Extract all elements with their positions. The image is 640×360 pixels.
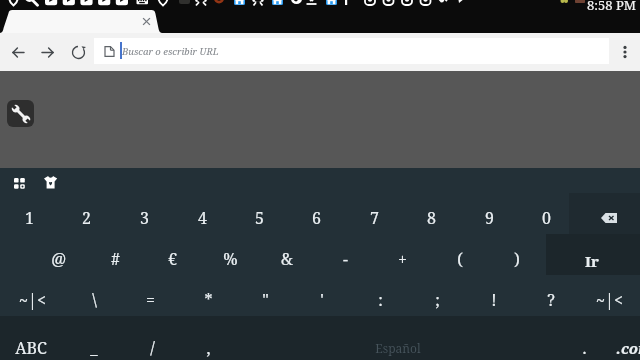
button[interactable]: _	[65, 316, 123, 360]
staticText: &	[281, 248, 293, 270]
staticText: 8	[427, 207, 436, 229]
button[interactable]: €	[143, 234, 201, 275]
staticText: 3	[140, 207, 149, 229]
staticText: 8:58 PM	[587, 0, 636, 14]
staticText: 9	[485, 207, 494, 229]
staticText: ;	[435, 289, 440, 311]
staticText: (	[457, 248, 463, 270]
staticText: \	[92, 289, 97, 311]
button[interactable]: &	[258, 234, 316, 275]
button[interactable]: ~|<	[3, 275, 61, 316]
staticText: ?	[547, 289, 555, 311]
button[interactable]: Apps	[10, 174, 28, 192]
staticText: Español	[375, 340, 421, 356]
staticText: #	[111, 248, 120, 270]
staticText: 2	[82, 207, 91, 229]
button[interactable]: 3	[115, 193, 173, 234]
button[interactable]: Backspace	[569, 193, 640, 234]
button[interactable]: .com	[612, 316, 640, 360]
button[interactable]: Reload	[65, 33, 92, 71]
button[interactable]: 6	[287, 193, 345, 234]
staticText: :	[378, 289, 383, 311]
staticText: 4	[198, 207, 207, 229]
button[interactable]: 9	[460, 193, 518, 234]
button[interactable]: %	[201, 234, 259, 275]
button[interactable]: !	[465, 275, 523, 316]
staticText: 1	[25, 207, 34, 229]
button[interactable]: .	[555, 316, 613, 360]
staticText: *	[204, 289, 213, 311]
staticText: +	[398, 248, 407, 270]
staticText: 0	[542, 207, 551, 229]
staticText: ~|<	[596, 289, 623, 311]
button[interactable]: More options	[614, 41, 636, 63]
staticText: 5	[255, 207, 264, 229]
button[interactable]: (	[431, 234, 489, 275]
button[interactable]: ABC	[2, 316, 60, 360]
button[interactable]: ~|<	[580, 275, 638, 316]
button[interactable]: "	[236, 275, 294, 316]
button[interactable]: '	[293, 275, 351, 316]
button[interactable]: :	[351, 275, 409, 316]
button[interactable]: Back	[5, 33, 32, 71]
button[interactable]: @	[29, 234, 87, 275]
staticText: !	[491, 289, 497, 311]
other: Backspace	[601, 213, 617, 223]
staticText: ~|<	[19, 289, 46, 311]
staticText: /	[150, 337, 155, 359]
button[interactable]: *	[179, 275, 237, 316]
button[interactable]: )	[488, 234, 546, 275]
button[interactable]: Buscar o escribir URL	[94, 38, 609, 64]
button[interactable]: Forward	[34, 33, 61, 71]
staticText: =	[146, 289, 155, 311]
staticText: '	[320, 289, 324, 311]
staticText: Ir	[585, 251, 599, 271]
button[interactable]: 2	[57, 193, 115, 234]
staticText: )	[514, 248, 520, 270]
staticText: .com	[616, 338, 640, 358]
button[interactable]: Español	[233, 316, 563, 360]
button[interactable]: 8	[402, 193, 460, 234]
button[interactable]: ;	[408, 275, 466, 316]
button[interactable]: #	[86, 234, 144, 275]
button[interactable]: Close tab	[140, 15, 153, 28]
button[interactable]: ?	[522, 275, 580, 316]
staticText: -	[343, 248, 348, 270]
button[interactable]: -	[316, 234, 374, 275]
button[interactable]: 0	[517, 193, 575, 234]
staticText: €	[168, 248, 177, 270]
button[interactable]: /	[123, 316, 181, 360]
staticText: "	[262, 289, 269, 311]
button[interactable]: 5	[230, 193, 288, 234]
staticText: _	[90, 337, 98, 359]
button[interactable]: =	[121, 275, 179, 316]
staticText: ,	[206, 337, 211, 359]
button[interactable]: Theme	[41, 173, 59, 191]
button[interactable]: 4	[173, 193, 231, 234]
staticText: 7	[370, 207, 379, 229]
staticText: %	[223, 248, 238, 270]
button[interactable]: 7	[345, 193, 403, 234]
button[interactable]: 1	[0, 193, 58, 234]
staticText: 6	[312, 207, 321, 229]
staticText: @	[51, 248, 66, 270]
button[interactable]: \	[65, 275, 123, 316]
button[interactable]: ,	[179, 316, 237, 360]
staticText: .	[582, 337, 587, 359]
button[interactable]: Ir	[545, 234, 639, 275]
button[interactable]: Tools	[7, 100, 34, 127]
staticText: ABC	[15, 337, 47, 359]
button[interactable]: +	[373, 234, 431, 275]
staticText: Buscar o escribir URL	[122, 45, 219, 58]
